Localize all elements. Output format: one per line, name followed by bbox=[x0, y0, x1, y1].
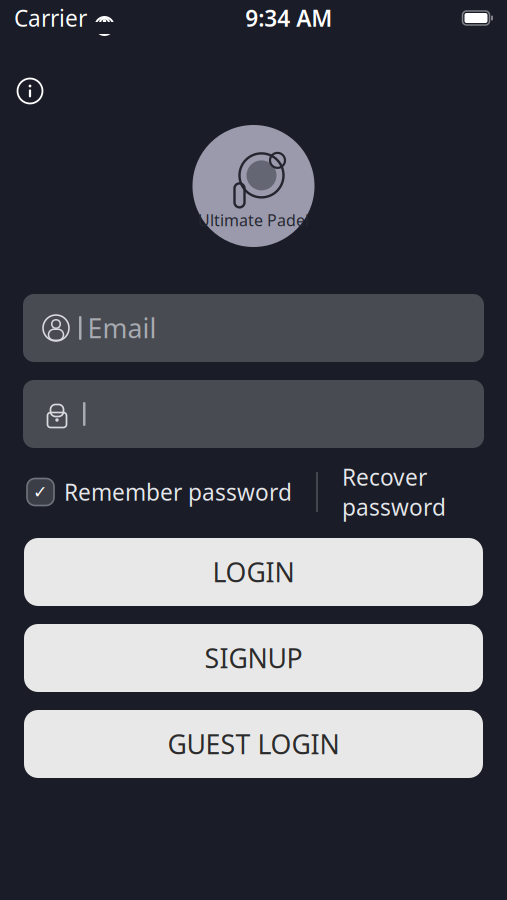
button[interactable]: ✓ bbox=[27, 469, 292, 515]
staticText: 9:34 AM bbox=[245, 3, 332, 33]
staticText: Ultimate Padel bbox=[198, 209, 309, 231]
staticText: Carrier bbox=[14, 3, 87, 33]
staticText: GUEST LOGIN bbox=[167, 726, 339, 762]
staticText: LOGIN bbox=[212, 554, 294, 590]
staticText: ✓ bbox=[33, 482, 48, 502]
button[interactable]: SIGNUP bbox=[24, 624, 483, 692]
button[interactable]: LOGIN bbox=[24, 538, 483, 606]
staticText: Email bbox=[87, 310, 156, 346]
staticText: Recover password bbox=[342, 462, 446, 522]
staticText: SIGNUP bbox=[204, 640, 302, 676]
staticText: Remember password bbox=[64, 477, 292, 507]
button[interactable]: Recover password bbox=[342, 454, 446, 530]
button[interactable]: Information bbox=[8, 69, 52, 113]
button[interactable]: GUEST LOGIN bbox=[24, 710, 483, 778]
